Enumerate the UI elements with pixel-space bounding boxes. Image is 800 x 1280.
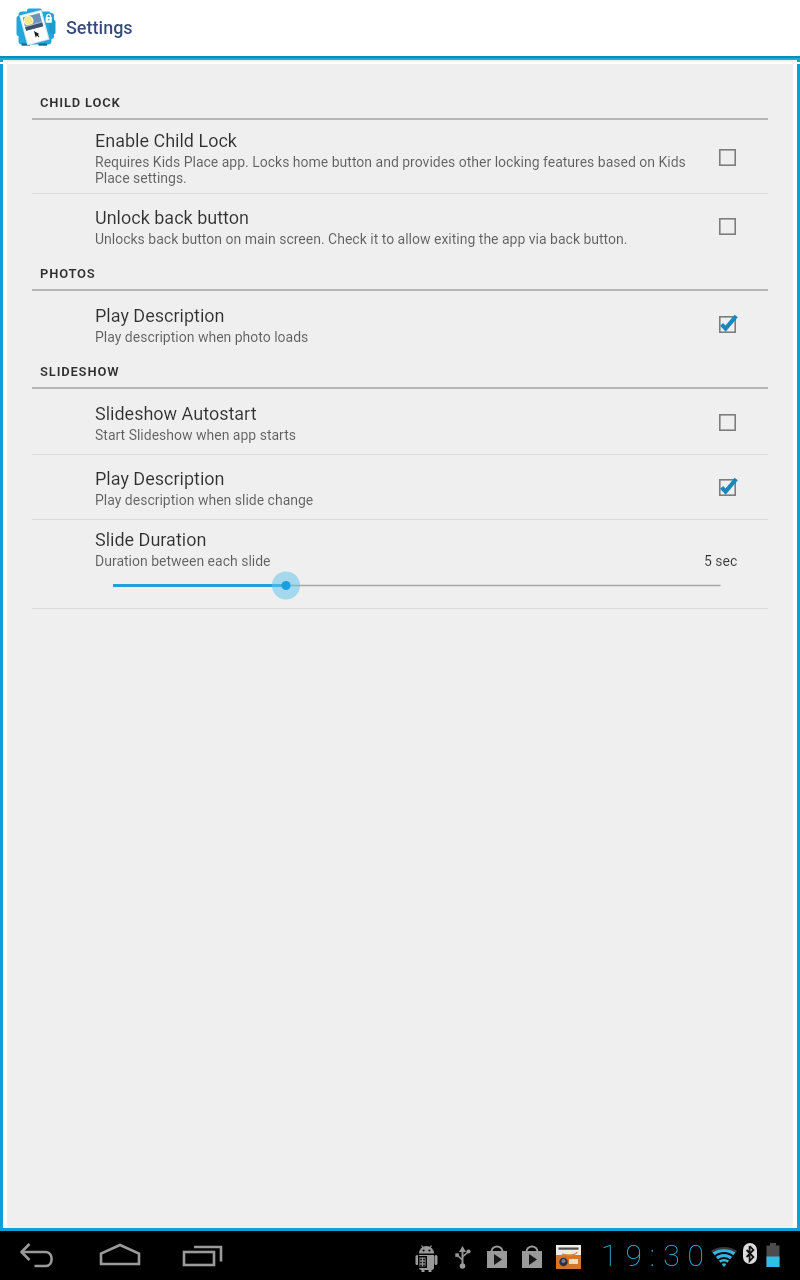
staticText: 5 sec xyxy=(704,553,738,569)
staticText: Play Description xyxy=(95,468,225,489)
button[interactable]: Back xyxy=(6,1228,74,1280)
staticText: Settings xyxy=(66,17,133,38)
staticText: Unlocks back button on main screen. Chec… xyxy=(95,231,628,247)
staticText: Slideshow Autostart xyxy=(95,403,257,424)
other: Toggle setting xyxy=(719,149,743,173)
staticText: Requires Kids Place app. Locks home butt… xyxy=(95,154,695,186)
other: Toggle setting xyxy=(719,218,743,242)
button[interactable]: Recent apps xyxy=(166,1228,238,1280)
button[interactable] xyxy=(0,455,800,519)
button[interactable] xyxy=(0,389,800,454)
staticText: Slide Duration xyxy=(95,529,207,550)
staticText: Play Description xyxy=(95,305,225,326)
staticText: Play description when photo loads xyxy=(95,329,309,345)
staticText: Start Slideshow when app starts xyxy=(95,427,296,443)
staticText: Enable Child Lock xyxy=(95,130,237,151)
other: Toggle setting xyxy=(719,414,743,438)
staticText: Play description when slide change xyxy=(95,492,314,508)
staticText: SLIDESHOW xyxy=(40,364,120,379)
button[interactable] xyxy=(0,520,800,608)
staticText: Unlock back button xyxy=(95,207,250,228)
other: Toggle setting xyxy=(719,479,743,503)
button[interactable]: Home xyxy=(84,1228,158,1280)
staticText: Duration between each slide xyxy=(95,553,271,569)
staticText: 19:30 xyxy=(601,1238,713,1270)
button[interactable] xyxy=(0,120,800,193)
staticText: PHOTOS xyxy=(40,266,96,281)
button[interactable] xyxy=(0,194,800,258)
other: Toggle setting xyxy=(719,316,743,340)
staticText: CHILD LOCK xyxy=(40,95,121,110)
button[interactable] xyxy=(0,291,800,356)
